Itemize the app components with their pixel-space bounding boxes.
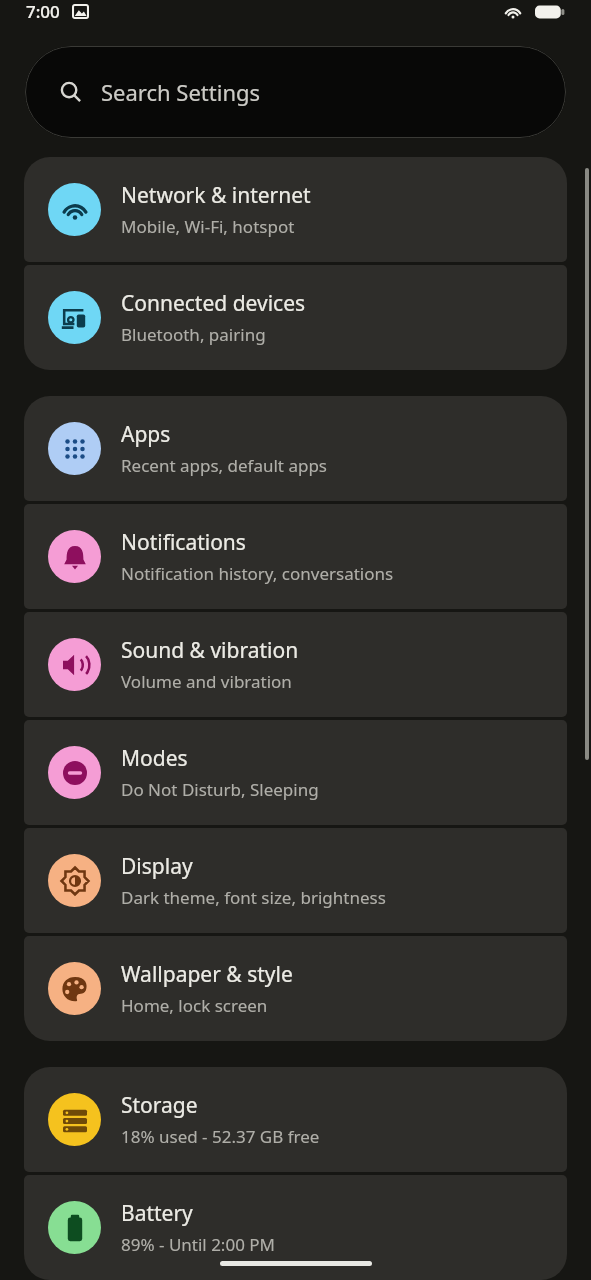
staticText: Connected devices [121,289,306,318]
button[interactable]: Connected devices [24,265,567,370]
staticText: Wallpaper & style [121,960,293,989]
staticText: Mobile, Wi-Fi, hotspot [121,215,295,238]
staticText: Volume and vibration [121,670,292,693]
button[interactable]: Notifications [24,504,567,609]
button[interactable]: Sound & vibration [24,612,567,717]
staticText: Search Settings [101,77,261,107]
staticText: Modes [121,744,188,773]
staticText: 89% - Until 2:00 PM [121,1233,276,1256]
button[interactable]: Modes [24,720,567,825]
staticText: Sound & vibration [121,636,299,665]
staticText: Home, lock screen [121,994,268,1017]
staticText: Recent apps, default apps [121,454,328,477]
button[interactable]: Apps [24,396,567,501]
staticText: Bluetooth, pairing [121,323,266,346]
staticText: Dark theme, font size, brightness [121,886,386,909]
staticText: Network & internet [121,181,311,210]
staticText: Apps [121,420,171,449]
button[interactable]: Network & internet [24,157,567,262]
staticText: Display [121,852,193,881]
staticText: Notifications [121,528,246,557]
staticText: Notification history, conversations [121,562,394,585]
staticText: 18% used - 52.37 GB free [121,1125,320,1148]
staticText: Storage [121,1091,198,1120]
staticText: 7:00 [26,0,60,23]
button[interactable]: Wallpaper & style [24,936,567,1041]
button[interactable]: Display [24,828,567,933]
staticText: Battery [121,1199,193,1228]
button[interactable]: Search Settings [25,46,566,138]
button[interactable]: Storage [24,1067,567,1172]
staticText: Do Not Disturb, Sleeping [121,778,319,801]
button[interactable]: Battery [24,1175,567,1280]
